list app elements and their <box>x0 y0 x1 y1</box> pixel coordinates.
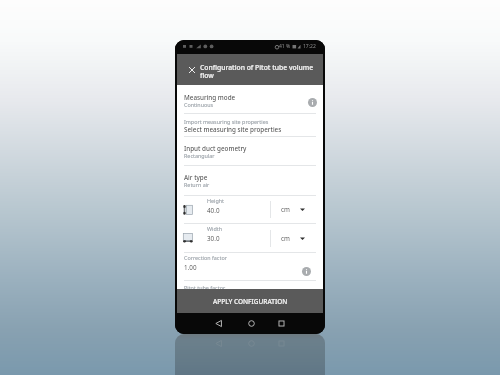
button[interactable]: cm <box>271 196 317 223</box>
staticText: 17:22 <box>303 43 316 50</box>
button[interactable]: Close <box>183 54 201 85</box>
button[interactable]: Height <box>177 196 323 223</box>
button[interactable]: Recent apps <box>278 320 285 327</box>
staticText: 1.00 <box>184 263 197 272</box>
button[interactable]: Import measuring site properties <box>177 114 323 136</box>
staticText: APPLY CONFIGURATION <box>213 297 288 306</box>
staticText: Import measuring site properties <box>184 118 269 125</box>
staticText: Rectangular <box>184 152 215 159</box>
button[interactable]: Measuring mode <box>177 85 323 113</box>
button[interactable]: Air type <box>177 166 323 195</box>
button[interactable]: Correction factor <box>177 253 323 280</box>
button[interactable]: More information <box>302 267 311 276</box>
staticText: Pitot tube factor <box>184 284 226 289</box>
staticText: Air type <box>184 173 208 182</box>
button[interactable]: cm <box>271 224 317 252</box>
staticText: Height <box>207 197 225 204</box>
button[interactable]: Home <box>248 340 255 347</box>
staticText: cm <box>281 205 290 214</box>
staticText: 30.0 <box>207 234 220 243</box>
staticText: cm <box>281 234 290 243</box>
button[interactable]: Home <box>248 320 255 327</box>
staticText: Continuous <box>184 101 214 108</box>
button[interactable]: Back <box>215 340 222 347</box>
staticText: Input duct geometry <box>184 144 247 153</box>
staticText: Return air <box>184 181 210 188</box>
staticText: Width <box>207 225 222 232</box>
staticText: Measuring mode <box>184 93 236 102</box>
staticText: 40.0 <box>207 206 220 215</box>
button[interactable]: Width <box>177 224 323 252</box>
button[interactable]: More information <box>308 98 317 107</box>
staticText: Configuration of Pitot tube volume flow <box>200 63 315 80</box>
button[interactable]: Input duct geometry <box>177 137 323 165</box>
button[interactable]: Back <box>215 320 222 327</box>
staticText: Select measuring site properties <box>184 125 282 134</box>
staticText: Correction factor <box>184 254 227 261</box>
staticText: 41 % <box>279 43 291 50</box>
button[interactable]: APPLY CONFIGURATION <box>177 289 323 313</box>
